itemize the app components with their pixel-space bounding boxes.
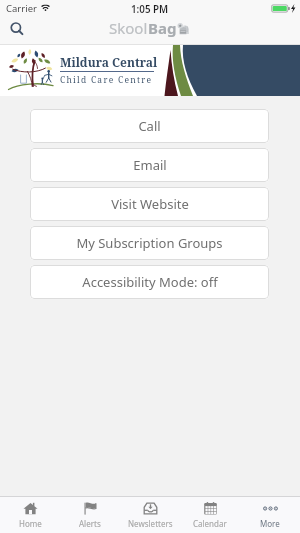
staticText: Accessibility Mode: off [82, 273, 218, 291]
button[interactable]: Alerts [60, 497, 120, 533]
staticText: 1:05 PM [131, 3, 169, 16]
staticText: Email [133, 156, 167, 174]
button[interactable]: Accessibility Mode: off [30, 265, 269, 299]
button[interactable]: Home [0, 497, 60, 533]
button[interactable]: Email [30, 148, 269, 182]
staticText: Bag [148, 18, 177, 38]
staticText: Alerts [79, 518, 101, 529]
staticText: Home [19, 518, 42, 529]
staticText: Child Care Centre [60, 74, 153, 86]
button[interactable]: Newsletters [120, 497, 180, 533]
button[interactable]: Calendar [180, 497, 240, 533]
staticText: Skool [109, 18, 148, 38]
staticText: Mildura Central [60, 54, 158, 70]
staticText: Newsletters [128, 518, 173, 529]
button[interactable]: My Subscription Groups [30, 226, 269, 260]
button[interactable]: Search [5, 17, 28, 40]
button[interactable]: Visit Website [30, 187, 269, 221]
button[interactable]: Call [30, 109, 269, 143]
button[interactable]: More [240, 497, 300, 533]
staticText: Calendar [193, 518, 227, 529]
staticText: More [260, 518, 280, 529]
staticText: My Subscription Groups [76, 234, 223, 252]
staticText: Call [138, 117, 161, 135]
staticText: Carrier [6, 2, 37, 15]
staticText: Visit Website [111, 195, 189, 213]
